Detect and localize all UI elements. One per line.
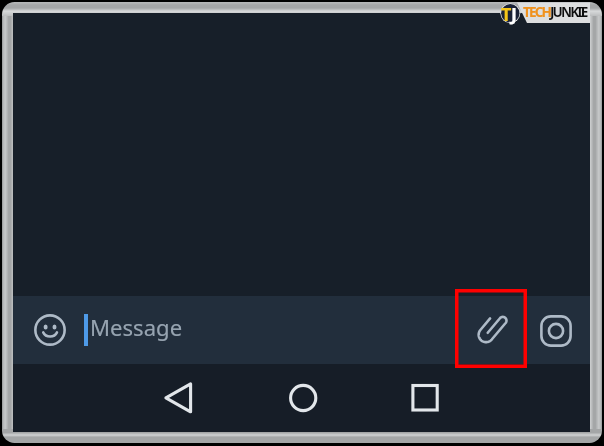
button[interactable]: Back: [156, 375, 192, 421]
staticText: J: [511, 2, 517, 27]
button[interactable]: Home: [289, 372, 341, 424]
button[interactable]: Recent apps: [411, 372, 463, 424]
staticText: TECH: [523, 2, 550, 21]
button[interactable]: Open camera: [540, 315, 572, 347]
button[interactable]: Attach file: [455, 289, 527, 368]
button[interactable]: Insert emoji: [34, 314, 66, 346]
staticText: Message: [90, 312, 183, 342]
staticText: T: [501, 2, 512, 27]
staticText: JUNKIE: [550, 2, 587, 21]
button[interactable]: Message: [71, 296, 451, 364]
